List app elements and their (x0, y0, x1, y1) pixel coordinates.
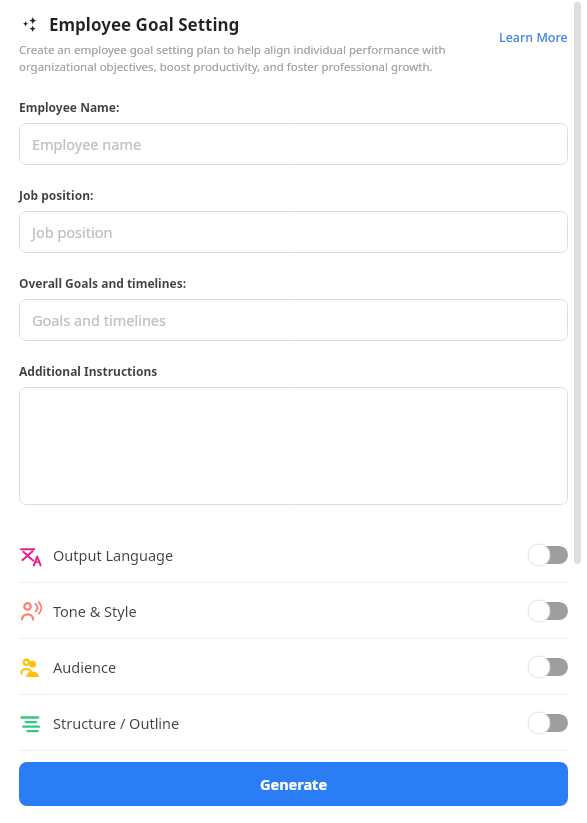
staticText: Structure / Outline (53, 713, 180, 733)
button[interactable]: Structure / Outline (0, 695, 587, 750)
staticText: Employee Goal Setting (49, 13, 240, 36)
button[interactable]: Toggle (528, 600, 568, 622)
staticText: Job position: (19, 187, 94, 203)
button[interactable]: Job position (19, 211, 568, 253)
button[interactable]: Goals and timelines (19, 299, 568, 341)
staticText: Employee name (32, 134, 142, 154)
staticText: Job position (32, 222, 113, 242)
staticText: Employee Name: (19, 99, 120, 115)
button[interactable]: Audience (0, 639, 587, 694)
staticText: Audience (53, 657, 117, 677)
staticText: Create an employee goal setting plan to … (19, 42, 491, 75)
button[interactable]: Tone & Style (0, 583, 587, 638)
button[interactable] (19, 387, 568, 505)
staticText: Learn More (499, 29, 568, 46)
staticText: Goals and timelines (32, 310, 166, 330)
button[interactable]: Employee name (19, 123, 568, 165)
button[interactable]: Toggle (528, 656, 568, 678)
staticText: Overall Goals and timelines: (19, 275, 187, 291)
button[interactable]: Toggle (528, 544, 568, 566)
button[interactable]: Learn More (499, 13, 568, 46)
button[interactable]: Output Language (0, 527, 587, 582)
staticText: Output Language (53, 545, 174, 565)
staticText: Generate (260, 774, 328, 794)
staticText: Tone & Style (53, 601, 137, 621)
button[interactable]: Generate (19, 762, 568, 806)
staticText: Additional Instructions (19, 363, 158, 379)
button[interactable]: Toggle (528, 712, 568, 734)
